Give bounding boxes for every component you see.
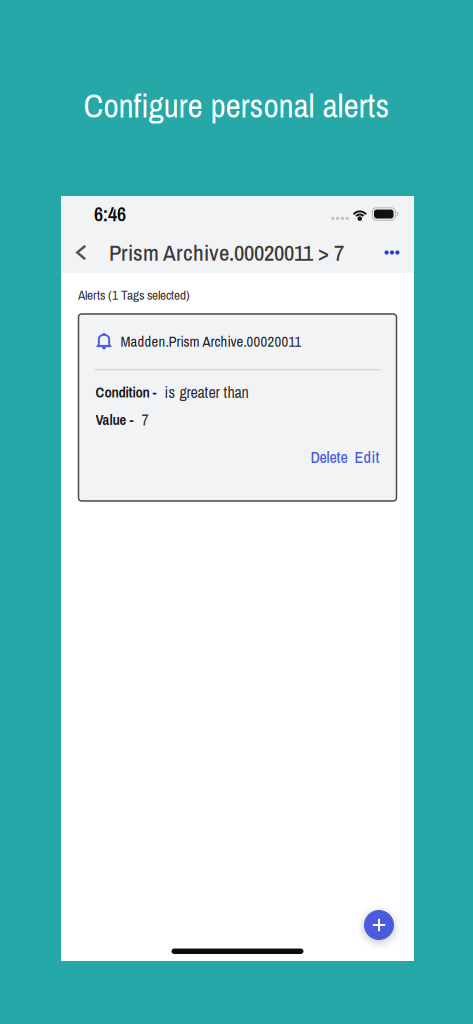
button[interactable]: Delete — [310, 446, 347, 468]
staticText: Edit — [354, 446, 379, 468]
button[interactable]: More options — [377, 232, 407, 273]
staticText: 7 — [141, 409, 148, 430]
staticText: Alerts (1 Tags selected) — [78, 286, 190, 304]
staticText: Prism Archive.00020011 > 7 — [109, 237, 344, 268]
staticText: Value - — [95, 410, 133, 430]
button[interactable]: Back — [68, 232, 94, 273]
staticText: Configure personal alerts — [83, 83, 389, 128]
button[interactable]: Add alert — [364, 910, 394, 940]
staticText: is greater than — [164, 381, 248, 403]
staticText: Madden.Prism Archive.00020011 — [120, 332, 301, 351]
staticText: Delete — [310, 446, 347, 468]
button[interactable]: Edit — [354, 446, 379, 468]
staticText: 6:46 — [94, 200, 126, 227]
staticText: Condition - — [95, 382, 156, 402]
